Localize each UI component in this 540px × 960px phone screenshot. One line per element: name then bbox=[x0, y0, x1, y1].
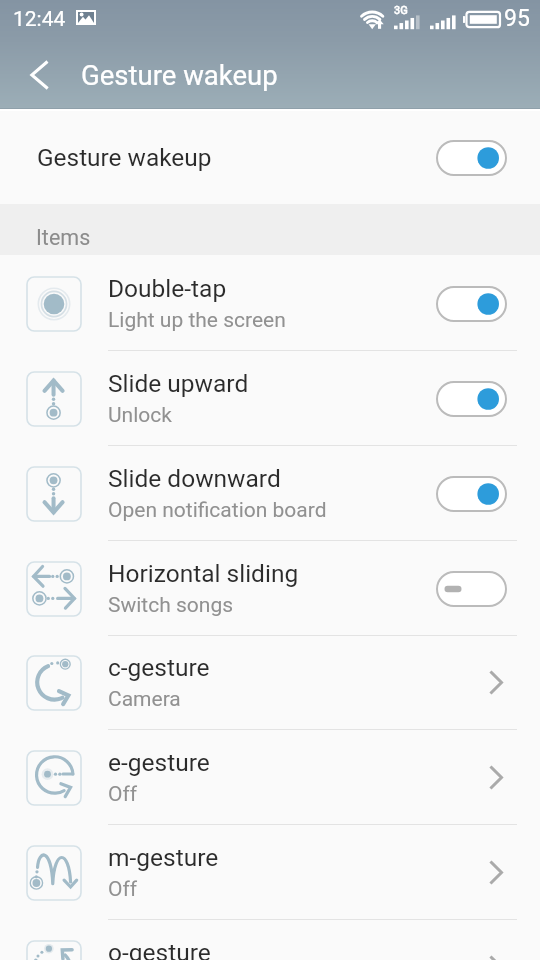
staticText: 95 bbox=[504, 5, 530, 32]
staticText: 12:44 bbox=[13, 7, 66, 32]
staticText: Off bbox=[108, 782, 138, 807]
staticText: Unlock bbox=[108, 403, 172, 428]
staticText: Gesture wakeup bbox=[37, 143, 212, 172]
staticText: Gesture wakeup bbox=[81, 59, 278, 91]
button[interactable]: e-gesture bbox=[0, 730, 540, 825]
staticText: c-gesture bbox=[108, 653, 210, 682]
staticText: e-gesture bbox=[108, 748, 210, 777]
button[interactable]: c-gesture bbox=[0, 635, 540, 730]
staticText: Slide upward bbox=[108, 369, 249, 398]
staticText: Camera bbox=[108, 687, 181, 712]
button[interactable]: Back bbox=[3, 40, 75, 109]
staticText: Double-tap bbox=[108, 274, 227, 303]
button[interactable]: Slide upward bbox=[0, 351, 540, 446]
staticText: Off bbox=[108, 877, 138, 902]
staticText: o-gesture bbox=[108, 938, 211, 960]
staticText: Open notification board bbox=[108, 498, 327, 523]
button[interactable]: Double-tap bbox=[0, 256, 540, 351]
button[interactable]: o-gesture bbox=[0, 920, 540, 960]
button[interactable]: Horizontal sliding bbox=[0, 541, 540, 636]
button[interactable]: Slide downward bbox=[0, 446, 540, 541]
button[interactable]: m-gesture bbox=[0, 825, 540, 920]
staticText: m-gesture bbox=[108, 843, 219, 872]
button[interactable]: Gesture wakeup bbox=[0, 111, 540, 204]
staticText: 3G bbox=[394, 4, 408, 17]
staticText: Light up the screen bbox=[108, 308, 286, 333]
staticText: Switch songs bbox=[108, 593, 234, 618]
staticText: Items bbox=[36, 225, 91, 250]
staticText: Horizontal sliding bbox=[108, 559, 299, 588]
staticText: Slide downward bbox=[108, 464, 281, 493]
